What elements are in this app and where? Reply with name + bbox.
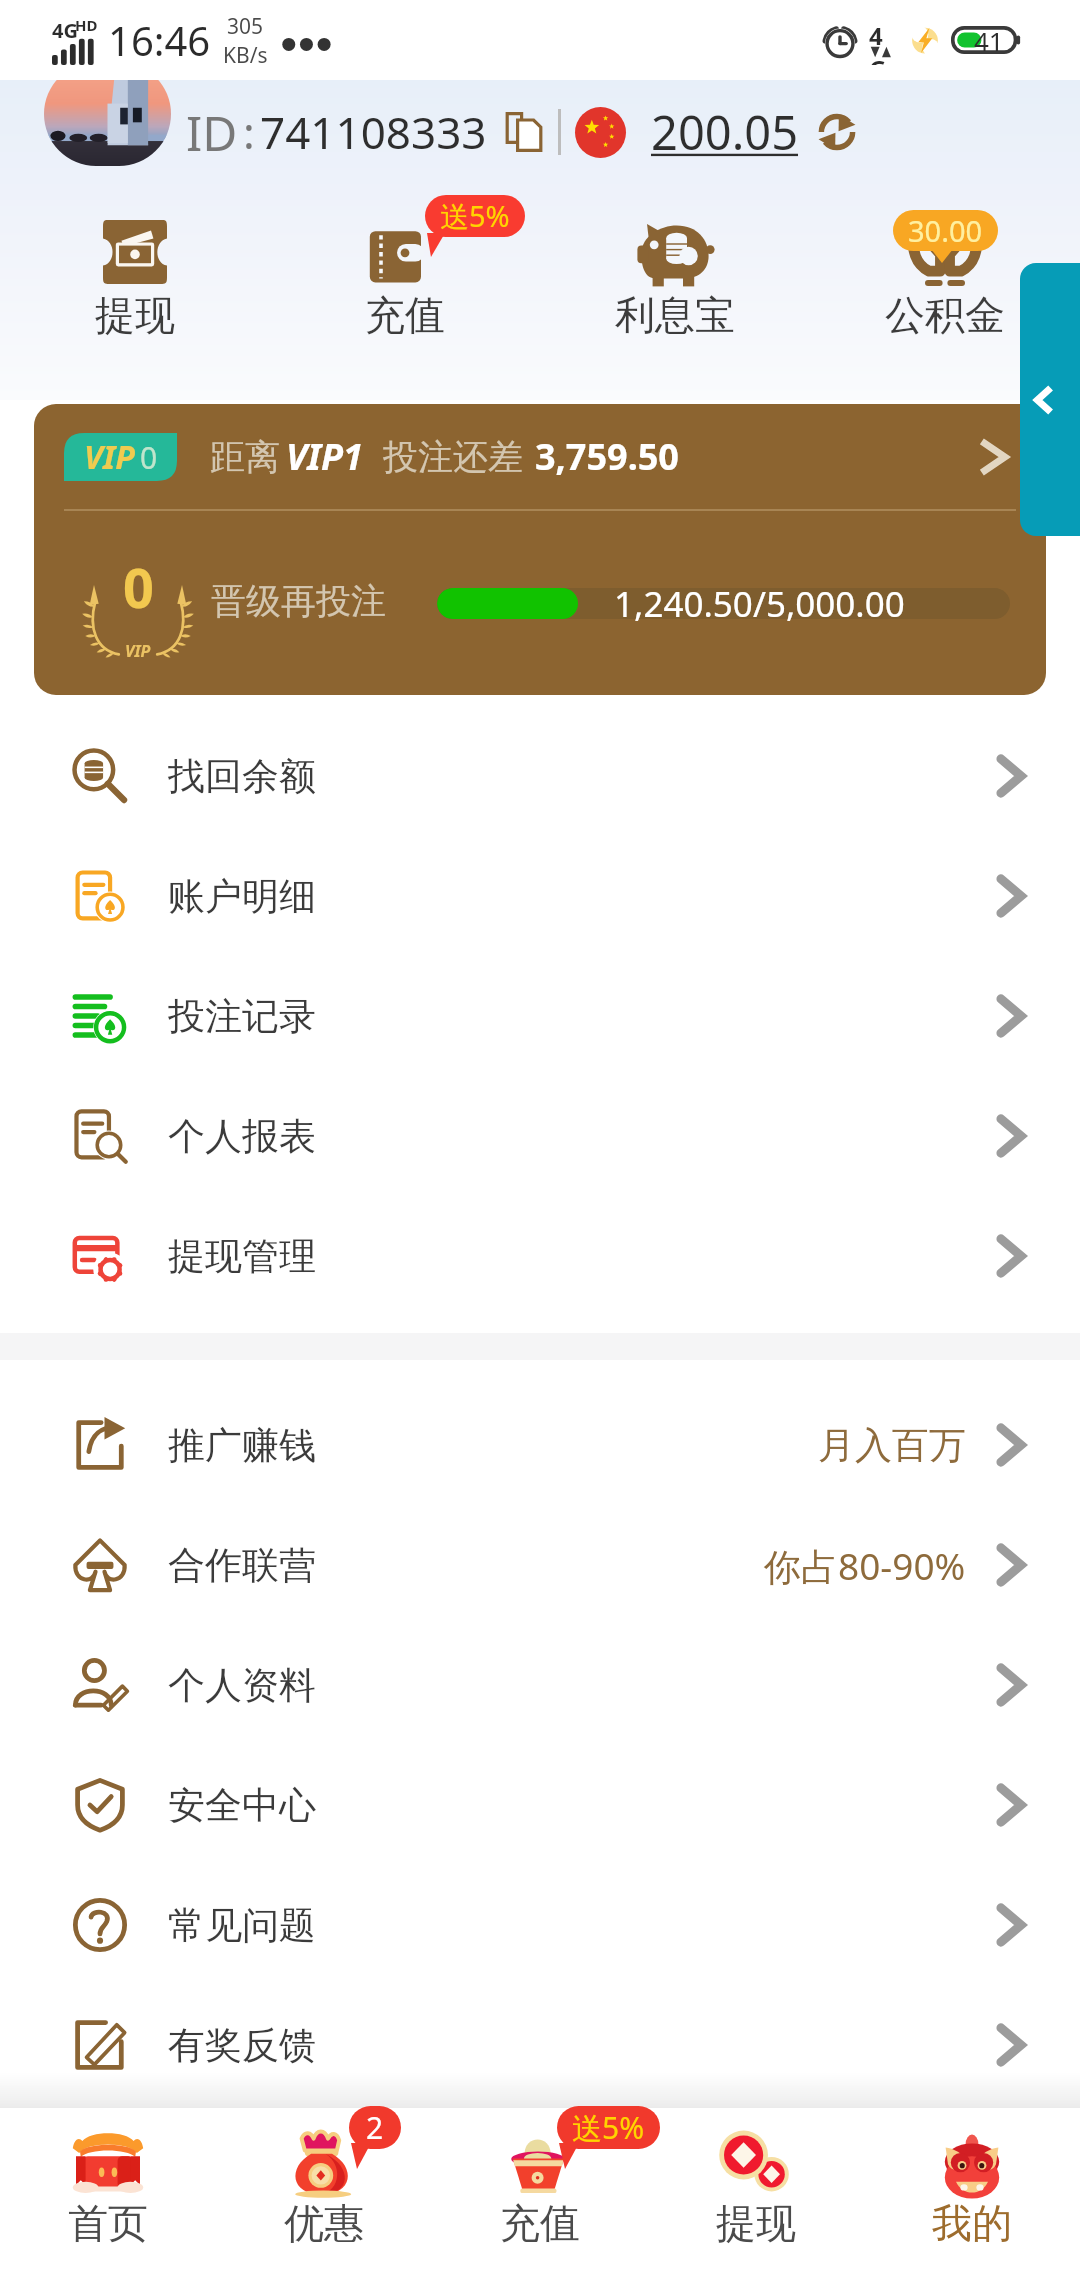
staticText: 账户明细 — [168, 873, 316, 920]
staticText: 2 — [366, 2107, 384, 2148]
staticText: 充值 — [500, 2198, 580, 2248]
staticText: 距离 — [210, 435, 280, 479]
staticText: 4G — [52, 17, 78, 44]
staticText: 个人资料 — [168, 1662, 316, 1709]
button[interactable]: Open side panel — [1020, 263, 1080, 536]
staticText: 优惠 — [284, 2198, 364, 2248]
staticText: VIP — [84, 435, 135, 479]
button[interactable]: 有奖反馈 — [0, 1985, 1080, 2105]
staticText: 提现管理 — [168, 1233, 316, 1280]
staticText: 投注还差 — [383, 435, 523, 479]
staticText: 4G — [869, 19, 893, 65]
button[interactable]: Refresh balance — [814, 109, 860, 155]
button[interactable]: 提现管理 — [0, 1196, 1080, 1316]
button[interactable]: 推广赚钱 — [0, 1385, 1080, 1505]
staticText: KB/s — [223, 41, 268, 68]
button[interactable]: 投注记录 — [0, 956, 1080, 1076]
staticText: 1,240.50/5,000.00 — [614, 580, 905, 628]
button[interactable]: 2 — [216, 2108, 432, 2248]
button[interactable]: VIP — [34, 404, 1046, 695]
staticText: 利息宝 — [615, 290, 735, 340]
staticText: 安全中心 — [168, 1782, 316, 1829]
staticText: 充值 — [365, 290, 445, 340]
button[interactable]: 个人报表 — [0, 1076, 1080, 1196]
button[interactable]: 送5% — [270, 208, 540, 340]
staticText: 常见问题 — [168, 1902, 316, 1949]
button[interactable]: 30.00 — [810, 208, 1080, 340]
staticText: 0 — [123, 550, 154, 624]
button[interactable]: Copy ID — [501, 109, 547, 155]
staticText: 41 — [974, 23, 1004, 58]
staticText: : — [243, 102, 255, 162]
button[interactable]: 合作联营 — [0, 1505, 1080, 1625]
button[interactable]: 首页 — [0, 2108, 216, 2248]
staticText: 提现 — [95, 290, 175, 340]
staticText: 30.00 — [908, 211, 983, 250]
staticText: HD — [75, 15, 98, 35]
staticText: ID — [186, 100, 238, 165]
staticText: 我的 — [932, 2198, 1012, 2248]
staticText: 16:46 — [108, 13, 211, 67]
staticText: 个人报表 — [168, 1113, 316, 1160]
button[interactable]: 我的 — [864, 2108, 1080, 2248]
staticText: 推广赚钱 — [168, 1422, 316, 1469]
staticText: 首页 — [68, 2198, 148, 2248]
staticText: 你占80-90% — [764, 1540, 966, 1591]
button[interactable]: 利息宝 — [540, 208, 810, 340]
button[interactable]: 安全中心 — [0, 1745, 1080, 1865]
staticText: 0 — [140, 437, 158, 478]
staticText: 送5% — [440, 196, 510, 236]
staticText: 提现 — [716, 2198, 796, 2248]
staticText: 741108333 — [260, 102, 487, 162]
button[interactable]: 提现 — [648, 2108, 864, 2248]
staticText: 305 — [227, 12, 264, 41]
button[interactable]: 提现 — [0, 208, 270, 340]
button[interactable]: 送5% — [432, 2108, 648, 2248]
staticText: 200.05 — [651, 100, 799, 164]
staticText: 月入百万 — [818, 1422, 966, 1469]
staticText: 3,759.50 — [535, 432, 679, 481]
staticText: 晋级再投注 — [211, 579, 386, 623]
button[interactable]: 找回余额 — [0, 716, 1080, 836]
button[interactable]: Avatar — [44, 62, 171, 166]
staticText: 送5% — [572, 2107, 645, 2148]
staticText: 找回余额 — [168, 753, 316, 800]
staticText: 投注记录 — [168, 993, 316, 1040]
staticText: VIP — [125, 640, 151, 662]
button[interactable]: 常见问题 — [0, 1865, 1080, 1985]
button[interactable]: 账户明细 — [0, 836, 1080, 956]
staticText: 有奖反馈 — [168, 2022, 316, 2069]
staticText: 合作联营 — [168, 1542, 316, 1589]
staticText: 公积金 — [885, 290, 1005, 340]
button[interactable]: 个人资料 — [0, 1625, 1080, 1745]
staticText: VIP1 — [286, 432, 363, 481]
